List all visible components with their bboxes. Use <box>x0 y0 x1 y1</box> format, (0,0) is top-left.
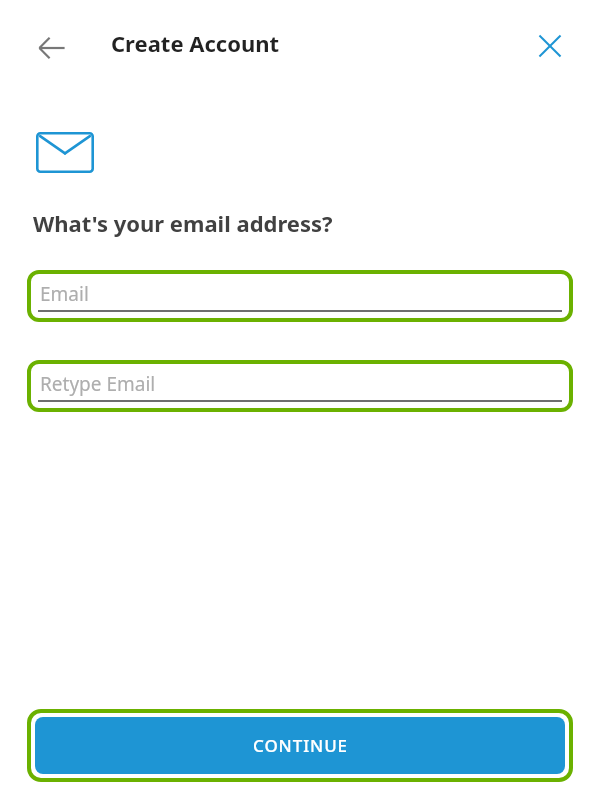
staticText: Email <box>40 281 89 307</box>
staticText: CONTINUE <box>253 734 348 757</box>
button[interactable]: Back <box>24 20 80 76</box>
button[interactable]: Email <box>27 270 573 322</box>
staticText: Retype Email <box>40 371 156 397</box>
button[interactable]: CONTINUE <box>27 709 573 782</box>
button[interactable]: Close <box>524 20 576 72</box>
button[interactable]: Retype Email <box>27 360 573 412</box>
staticText: Create Account <box>111 28 280 58</box>
staticText: What's your email address? <box>33 208 333 238</box>
